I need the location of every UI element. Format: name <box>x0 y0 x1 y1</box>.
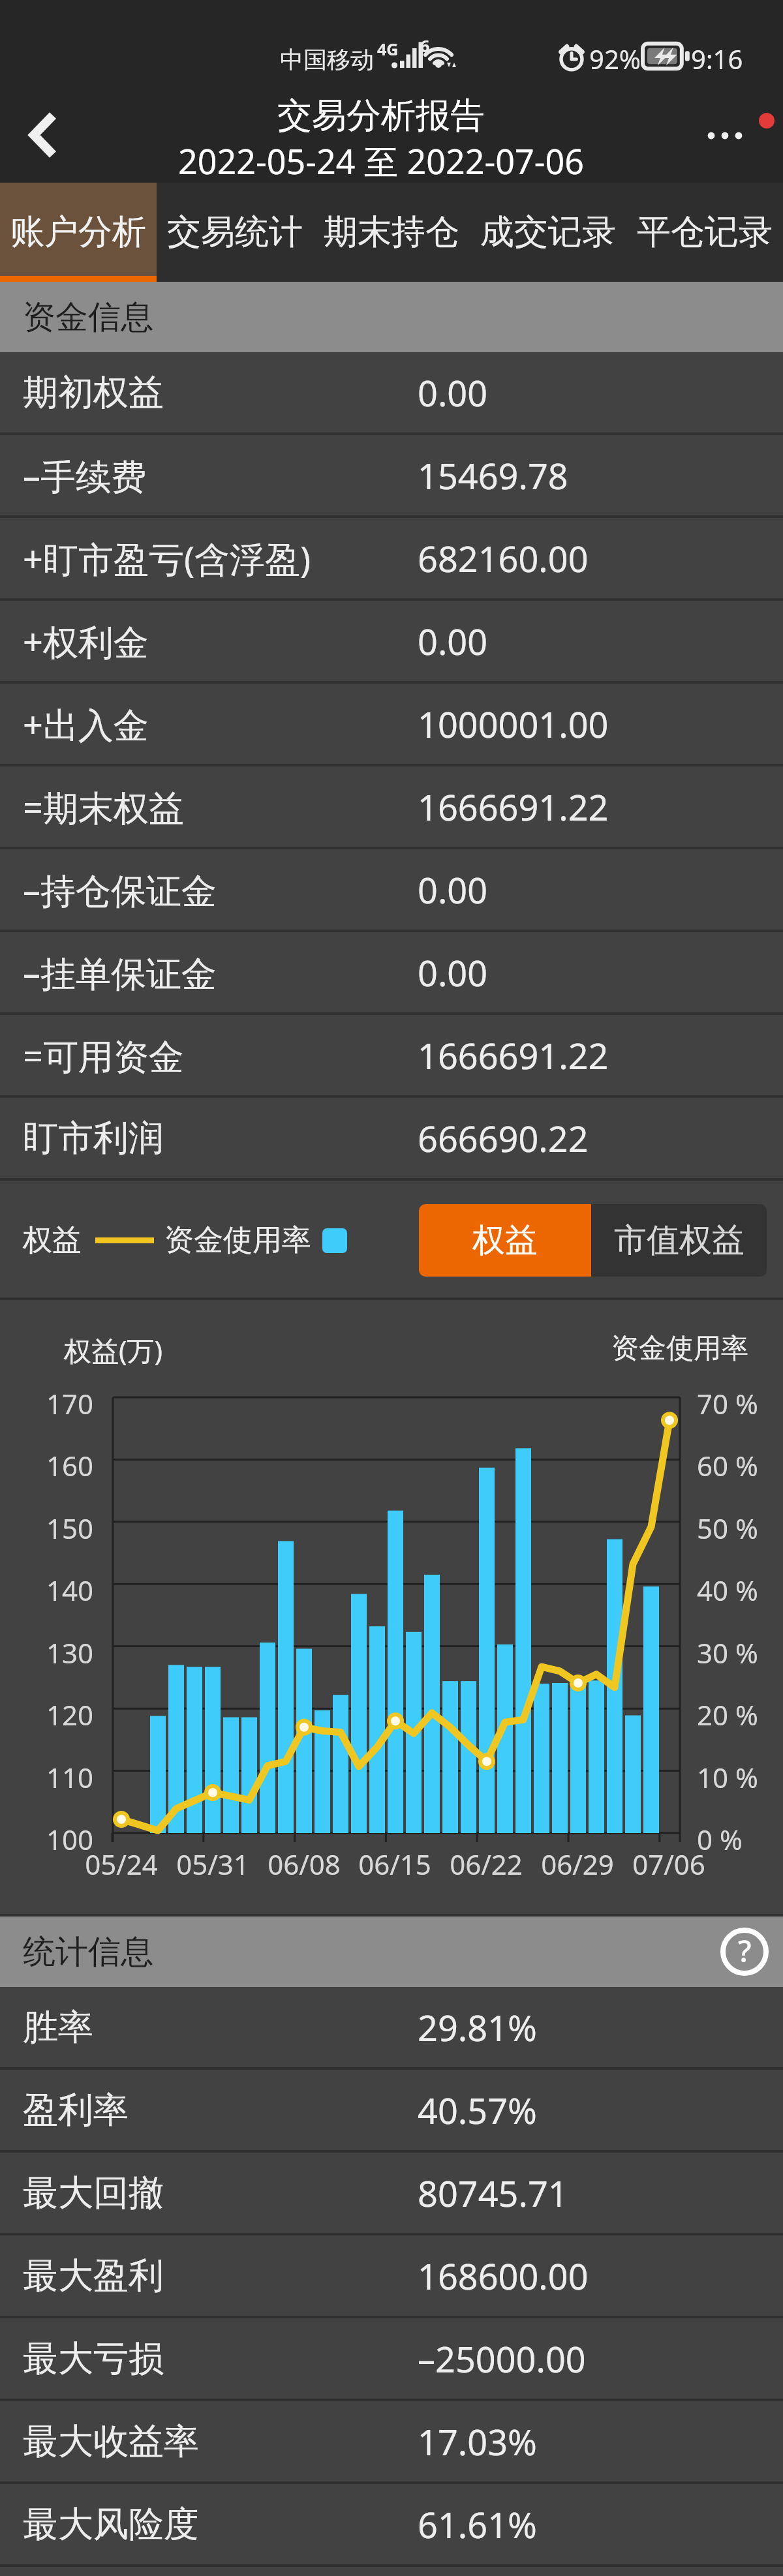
button[interactable]: 市值权益 <box>591 1204 767 1277</box>
staticText: 20 % <box>697 1696 758 1733</box>
staticText: 1000001.00 <box>418 700 609 748</box>
staticText: 50 % <box>697 1509 758 1547</box>
staticText: 17.03% <box>418 2417 537 2466</box>
button[interactable]: 胜率 <box>0 1987 783 2067</box>
staticText: 资金使用率 <box>164 1222 311 1259</box>
button[interactable]: 成交记录 <box>470 183 626 282</box>
staticText: 170 <box>28 1385 93 1422</box>
staticText: 盯市利润 <box>23 1116 164 1160</box>
staticText: 期末持仓 <box>324 211 459 254</box>
staticText: 0.00 <box>418 617 488 665</box>
staticText: 60 % <box>697 1447 758 1484</box>
staticText: +盯市盈亏(含浮盈) <box>23 534 311 583</box>
staticText: 权益 <box>472 1220 538 1261</box>
staticText: 权益 <box>23 1222 82 1259</box>
button[interactable]: +出入金 <box>0 684 783 764</box>
staticText: 胜率 <box>23 2005 93 2050</box>
staticText: 682160.00 <box>418 534 589 583</box>
staticText: –挂单保证金 <box>23 948 217 997</box>
staticText: 1666691.22 <box>418 1031 609 1080</box>
staticText: 100 <box>28 1821 93 1858</box>
staticText: 06/08 <box>245 1845 363 1883</box>
button[interactable]: =期末权益 <box>0 766 783 847</box>
staticText: =期末权益 <box>23 783 184 831</box>
staticText: 0.00 <box>418 948 488 997</box>
button[interactable]: –挂单保证金 <box>0 932 783 1012</box>
staticText: 1666691.22 <box>418 783 609 831</box>
button[interactable]: 期末持仓 <box>313 183 470 282</box>
staticText: 15469.78 <box>418 451 568 500</box>
staticText: 120 <box>28 1696 93 1733</box>
staticText: –25000.00 <box>418 2335 586 2383</box>
staticText: 最大收益率 <box>23 2419 199 2464</box>
button[interactable]: +权利金 <box>0 601 783 681</box>
staticText: 0.00 <box>418 369 488 417</box>
staticText: 666690.22 <box>418 1114 589 1162</box>
staticText: 最大亏损 <box>23 2337 164 2381</box>
staticText: 29.81% <box>418 2003 537 2052</box>
staticText: 40.57% <box>418 2086 537 2134</box>
staticText: ? <box>738 1930 752 1971</box>
button[interactable]: +盯市盈亏(含浮盈) <box>0 518 783 598</box>
staticText: 06/15 <box>336 1845 453 1883</box>
staticText: 92% <box>589 41 641 76</box>
button[interactable]: 期初权益 <box>0 352 783 432</box>
button[interactable]: 盈利率 <box>0 2070 783 2150</box>
button[interactable]: 最大收益率 <box>0 2401 783 2481</box>
staticText: 最大回撤 <box>23 2171 164 2215</box>
staticText: 统计信息 <box>23 1932 153 1973</box>
staticText: 2022-05-24 至 2022-07-06 <box>178 138 584 184</box>
staticText: 40 % <box>697 1571 758 1609</box>
button[interactable]: –手续费 <box>0 435 783 515</box>
staticText: 160 <box>28 1447 93 1484</box>
staticText: 05/24 <box>63 1845 180 1883</box>
button[interactable]: 最大亏损 <box>0 2318 783 2399</box>
staticText: 140 <box>28 1571 93 1609</box>
button[interactable]: 盯市利润 <box>0 1098 783 1178</box>
staticText: 80745.71 <box>418 2169 568 2217</box>
button[interactable]: =可用资金 <box>0 1015 783 1095</box>
staticText: +权利金 <box>23 617 149 665</box>
staticText: 成交记录 <box>480 211 616 254</box>
staticText: 中国移动 <box>280 45 374 74</box>
button[interactable]: More options <box>685 85 783 183</box>
staticText: 05/31 <box>154 1845 271 1883</box>
staticText: 0.00 <box>418 866 488 914</box>
button[interactable]: 最大盈利 <box>0 2235 783 2316</box>
button[interactable]: 最大风险度 <box>0 2484 783 2564</box>
staticText: =可用资金 <box>23 1031 184 1080</box>
staticText: 150 <box>28 1509 93 1547</box>
button[interactable]: 最大回撤 <box>0 2153 783 2233</box>
staticText: 110 <box>28 1759 93 1796</box>
staticText: 平仓记录 <box>637 211 773 254</box>
button[interactable]: –持仓保证金 <box>0 849 783 930</box>
button[interactable]: 平仓记录 <box>626 183 783 282</box>
staticText: 70 % <box>697 1385 758 1422</box>
button[interactable]: 账户分析 <box>0 183 157 282</box>
staticText: +出入金 <box>23 700 149 748</box>
staticText: 61.61% <box>418 2500 537 2549</box>
staticText: 账户分析 <box>10 211 146 254</box>
staticText: 资金信息 <box>23 297 153 338</box>
staticText: 交易统计 <box>167 211 303 254</box>
button[interactable]: Back <box>0 85 85 183</box>
staticText: 最大风险度 <box>23 2502 199 2547</box>
staticText: 交易分析报告 <box>277 94 485 138</box>
staticText: 06/22 <box>427 1845 545 1883</box>
staticText: 期初权益 <box>23 371 164 415</box>
staticText: 06/29 <box>519 1845 636 1883</box>
staticText: 6 <box>420 35 430 57</box>
staticText: –持仓保证金 <box>23 866 217 914</box>
staticText: 市值权益 <box>614 1220 745 1261</box>
button[interactable]: 权益 <box>419 1204 591 1277</box>
staticText: 130 <box>28 1634 93 1671</box>
staticText: 4G <box>377 38 399 60</box>
staticText: –手续费 <box>23 451 146 500</box>
button[interactable]: 交易统计 <box>157 183 313 282</box>
staticText: 10 % <box>697 1759 758 1796</box>
staticText: 权益(万) <box>64 1331 163 1369</box>
staticText: 资金使用率 <box>611 1331 748 1366</box>
staticText: 30 % <box>697 1634 758 1671</box>
button[interactable]: Help <box>720 1928 769 1976</box>
staticText: 最大盈利 <box>23 2254 164 2298</box>
